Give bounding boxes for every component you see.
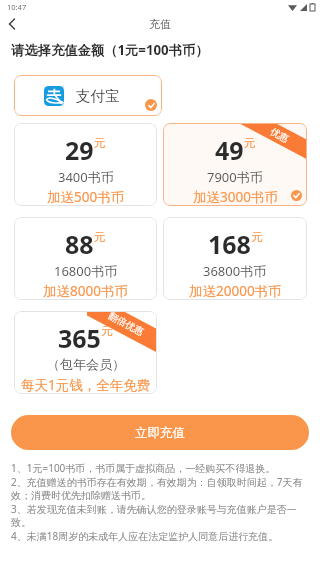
staticText: 365元 bbox=[58, 321, 113, 355]
staticText: 7900书币 bbox=[207, 168, 263, 186]
staticText: 每天1元钱，全年免费 bbox=[21, 376, 151, 394]
staticText: 加送20000书币 bbox=[189, 282, 282, 300]
staticText: 请选择充值金额（1元=100书币） bbox=[11, 41, 209, 59]
staticText: 88元 bbox=[65, 227, 106, 261]
button[interactable]: 立即充值 bbox=[11, 415, 309, 450]
staticText: 3400书币 bbox=[58, 168, 114, 186]
button[interactable]: Back bbox=[0, 14, 24, 34]
button[interactable]: 支付宝 bbox=[14, 75, 162, 116]
staticText: 29元 bbox=[65, 133, 106, 167]
button[interactable]: 翻倍优惠 bbox=[14, 311, 157, 394]
staticText: 36800书币 bbox=[203, 262, 267, 280]
staticText: 4、未满18周岁的未成年人应在法定监护人同意后进行充值。 bbox=[11, 529, 279, 543]
staticText: 1、1元=100书币，书币属于虚拟商品，一经购买不得退换。 bbox=[11, 461, 276, 475]
button[interactable]: 168元 bbox=[163, 217, 307, 300]
button[interactable]: 优惠 bbox=[163, 123, 307, 206]
staticText: （包年会员） bbox=[47, 356, 125, 372]
staticText: 2、充值赠送的书币存在有效期，有效期为：自领取时间起，7天有效；消费时优先扣除赠… bbox=[11, 475, 311, 502]
staticText: 加送8000书币 bbox=[43, 282, 128, 300]
staticText: 49元 bbox=[215, 133, 256, 167]
staticText: 优惠 bbox=[268, 125, 291, 145]
staticText: 168元 bbox=[208, 227, 263, 261]
staticText: 16800书币 bbox=[54, 262, 118, 280]
staticText: 充值 bbox=[149, 17, 171, 31]
staticText: 支付宝 bbox=[76, 87, 120, 105]
button[interactable]: 88元 bbox=[14, 217, 157, 300]
staticText: 10:47 bbox=[7, 2, 27, 12]
staticText: 加送500书币 bbox=[47, 188, 125, 206]
button[interactable]: 29元 bbox=[14, 123, 157, 206]
staticText: 翻倍优惠 bbox=[106, 311, 146, 338]
staticText: 3、若发现充值未到账，请先确认您的登录账号与充值账户是否一致。 bbox=[11, 502, 311, 529]
staticText: 立即充值 bbox=[135, 425, 185, 441]
staticText: 加送3000书币 bbox=[193, 188, 278, 206]
